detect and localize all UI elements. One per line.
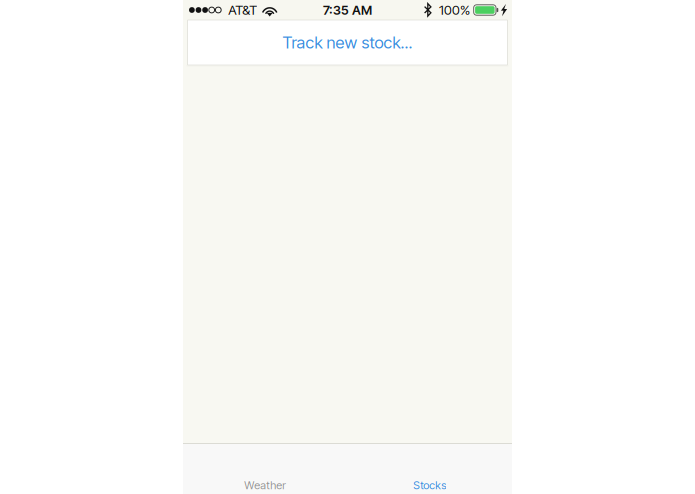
button[interactable]: Stocks xyxy=(347,444,512,494)
staticText: Stocks xyxy=(413,479,446,492)
button[interactable]: Track new stock... xyxy=(187,20,507,65)
button[interactable]: Weather xyxy=(183,444,347,494)
staticText: 100% xyxy=(439,2,470,18)
staticText: Track new stock... xyxy=(282,32,412,52)
staticText: 7:35 AM xyxy=(323,2,372,18)
staticText: Weather xyxy=(244,479,286,492)
staticText: AT&T xyxy=(228,2,257,18)
